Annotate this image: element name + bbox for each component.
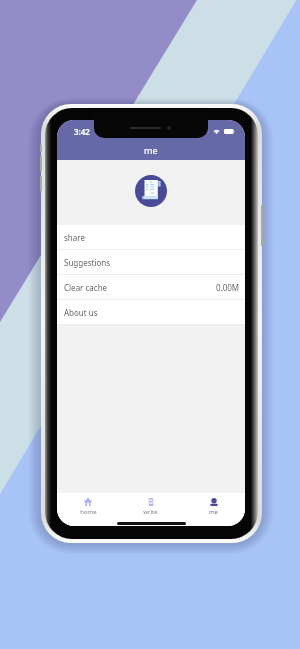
staticText: 0.00M <box>216 282 240 293</box>
staticText: me <box>209 508 218 516</box>
staticText: share <box>64 232 85 243</box>
button[interactable]: Profile avatar <box>135 175 167 207</box>
staticText: About us <box>64 307 98 318</box>
button[interactable]: share <box>57 225 245 250</box>
button[interactable]: me <box>182 498 245 516</box>
button[interactable]: home <box>57 498 119 516</box>
staticText: me <box>144 144 158 156</box>
button[interactable]: About us <box>57 300 245 325</box>
staticText: Clear cache <box>64 282 108 293</box>
button[interactable]: Clear cache <box>57 275 245 300</box>
staticText: write <box>143 508 158 516</box>
staticText: home <box>80 508 97 516</box>
button[interactable]: write <box>119 498 182 516</box>
button[interactable]: Suggestions <box>57 250 245 275</box>
staticText: Suggestions <box>64 257 111 268</box>
staticText: 3:42 <box>74 126 90 137</box>
